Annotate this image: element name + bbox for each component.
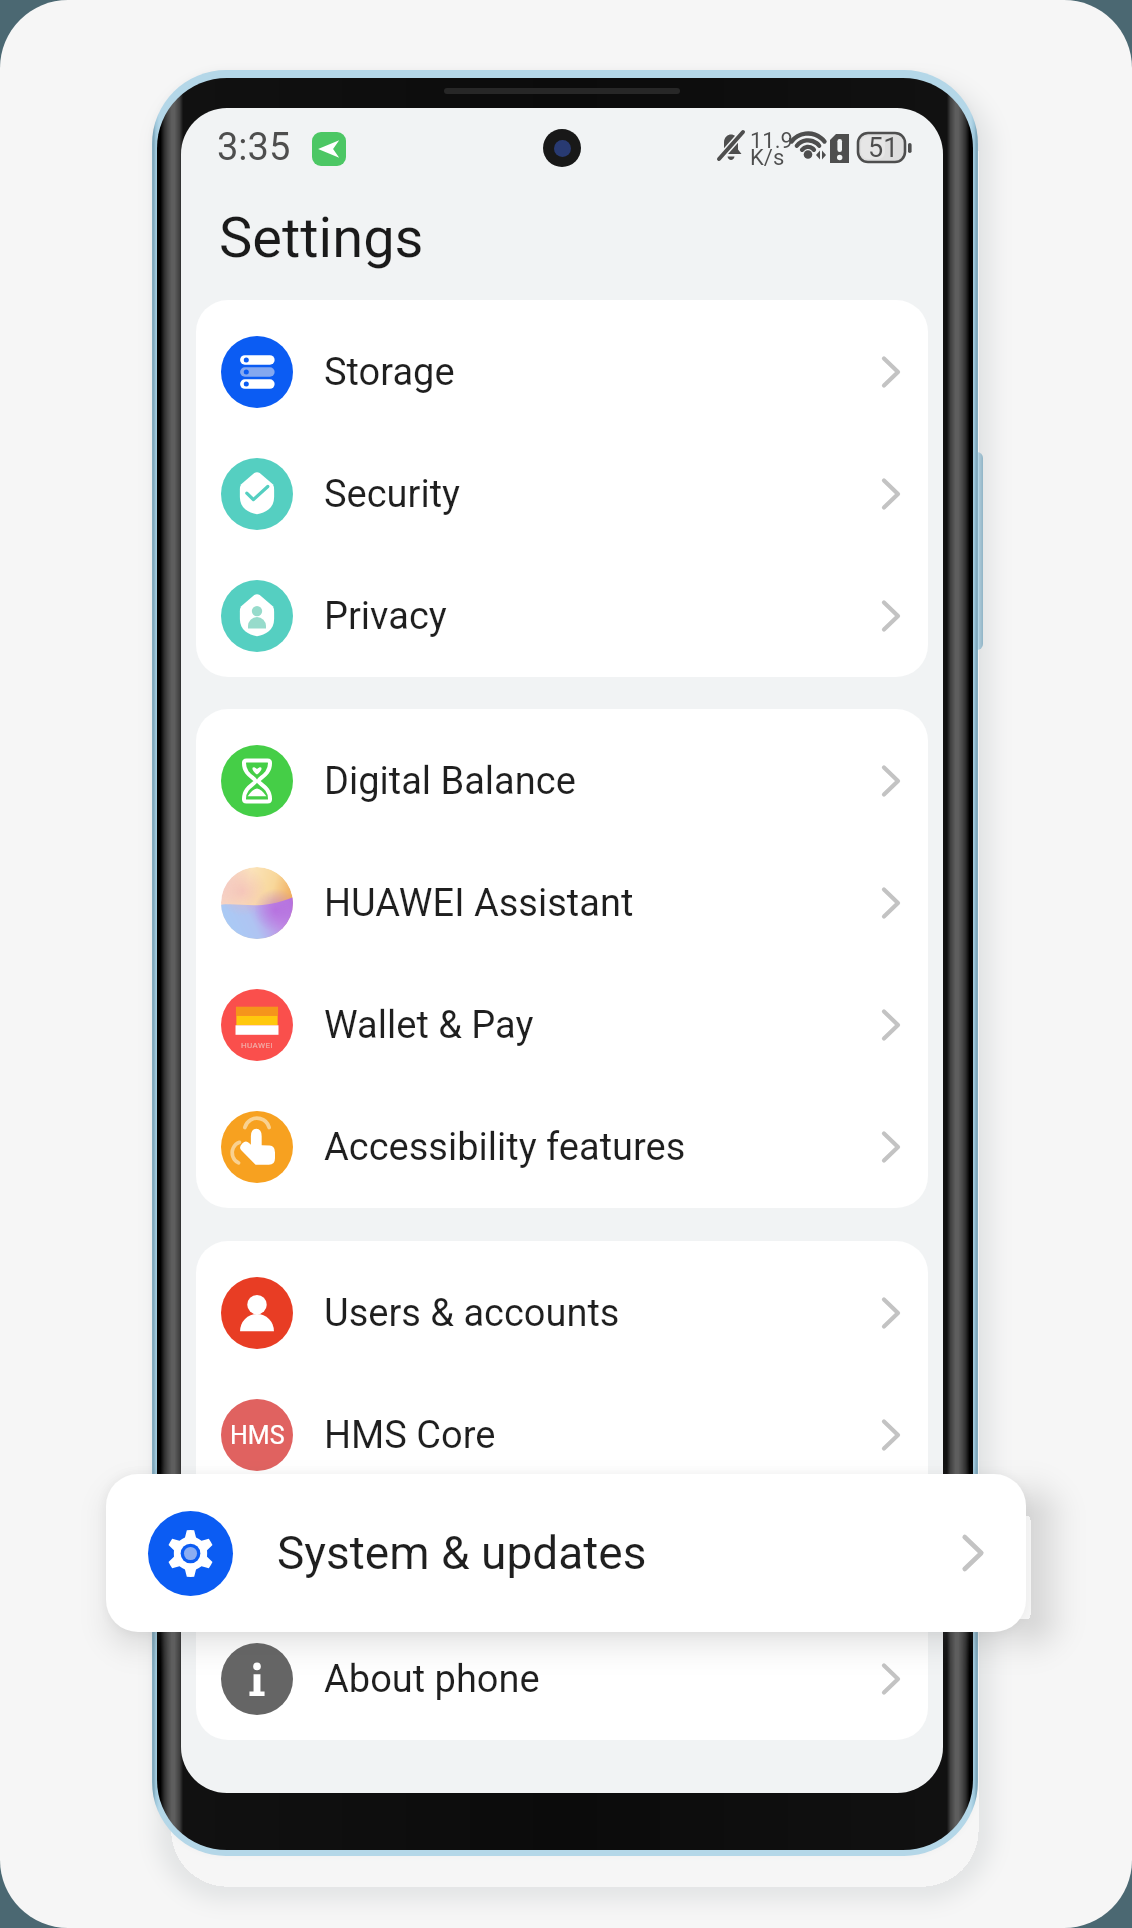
button[interactable]: System & updates — [106, 1474, 1026, 1632]
staticText: HUAWEI — [241, 1041, 273, 1050]
button[interactable]: HUAWEI — [196, 964, 928, 1086]
button[interactable]: HUAWEI Assistant — [196, 842, 928, 964]
button[interactable]: Users & accounts — [196, 1252, 928, 1374]
button[interactable]: Storage — [196, 311, 928, 433]
button[interactable]: HMS — [196, 1374, 928, 1496]
staticText: HMS — [230, 1421, 285, 1450]
staticText: About phone — [324, 1657, 540, 1702]
staticText: HMS Core — [324, 1413, 496, 1458]
staticText: Digital Balance — [324, 759, 576, 804]
staticText: 51 — [868, 132, 899, 160]
button[interactable]: Digital Balance — [196, 720, 928, 842]
staticText: Storage — [324, 350, 455, 395]
staticText: Users & accounts — [324, 1291, 620, 1336]
staticText: 11.9 K/s — [750, 128, 793, 170]
staticText: System & updates — [277, 1526, 647, 1580]
button[interactable]: Privacy — [196, 555, 928, 677]
staticText: Privacy — [324, 594, 447, 639]
staticText: Wallet & Pay — [324, 1003, 534, 1048]
staticText: 3:35 — [217, 125, 291, 170]
button[interactable]: System & updates — [196, 1496, 928, 1618]
staticText: Settings — [219, 205, 424, 271]
button[interactable]: Accessibility features — [196, 1086, 928, 1208]
button[interactable]: Security — [196, 433, 928, 555]
staticText: Security — [324, 472, 461, 517]
staticText: Accessibility features — [324, 1125, 686, 1170]
staticText: System & updates — [324, 1535, 630, 1580]
button[interactable]: About phone — [196, 1618, 928, 1740]
staticText: HUAWEI Assistant — [324, 881, 634, 926]
